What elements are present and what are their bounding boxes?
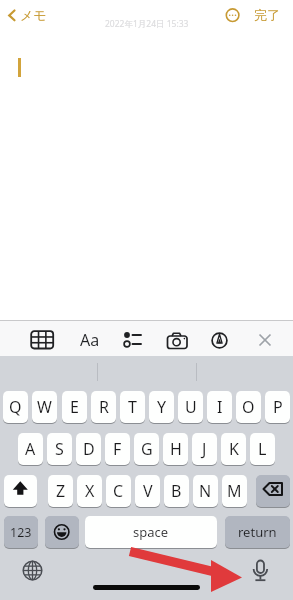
staticText: メモ (20, 7, 47, 23)
button[interactable]: Y (149, 391, 174, 423)
button[interactable]: N (193, 475, 218, 507)
staticText: return (238, 523, 277, 541)
button[interactable]: C (106, 475, 131, 507)
staticText: W (37, 396, 52, 418)
button[interactable]: T (120, 391, 145, 423)
staticText: C (113, 480, 124, 502)
staticText: I (217, 396, 223, 418)
button[interactable]: U (178, 391, 203, 423)
staticText: J (202, 438, 207, 460)
button[interactable] (256, 475, 290, 507)
button[interactable] (206, 327, 234, 353)
button[interactable]: Q (3, 391, 28, 423)
button[interactable]: 123 (4, 516, 38, 548)
button[interactable] (248, 556, 273, 584)
button[interactable]: Aa (74, 327, 106, 353)
button[interactable]: O (236, 391, 261, 423)
button[interactable]: L (250, 433, 275, 465)
button[interactable]: H (163, 433, 188, 465)
staticText: Aa (80, 329, 100, 351)
button[interactable]: return (225, 516, 290, 548)
staticText: V (143, 480, 153, 502)
staticText: space (133, 523, 169, 541)
staticText: G (141, 438, 153, 460)
button[interactable]: F (105, 433, 130, 465)
staticText: N (199, 480, 212, 502)
button[interactable]: M (222, 475, 247, 507)
button[interactable]: X (77, 475, 102, 507)
button[interactable] (252, 327, 278, 353)
staticText: Z (56, 480, 66, 502)
button[interactable]: E (62, 391, 87, 423)
staticText: U (185, 396, 197, 418)
staticText: 2022年1月24日 15:33 (105, 18, 189, 30)
button[interactable]: G (134, 433, 159, 465)
button[interactable]: V (135, 475, 160, 507)
staticText: K (229, 438, 239, 460)
button[interactable]: P (265, 391, 290, 423)
staticText: Q (9, 396, 22, 418)
staticText: B (171, 480, 182, 502)
staticText: A (25, 438, 36, 460)
staticText: S (55, 438, 64, 460)
button[interactable] (28, 327, 56, 353)
button[interactable] (45, 516, 79, 548)
button[interactable] (21, 559, 44, 582)
staticText: M (227, 480, 242, 502)
staticText: L (258, 438, 267, 460)
staticText: O (242, 396, 255, 418)
button[interactable]: B (164, 475, 189, 507)
button[interactable] (118, 327, 146, 353)
button[interactable]: I (207, 391, 232, 423)
staticText: E (70, 396, 79, 418)
button[interactable] (4, 475, 37, 507)
button[interactable]: R (91, 391, 116, 423)
button[interactable] (224, 6, 242, 24)
staticText: H (170, 438, 182, 460)
staticText: P (273, 396, 283, 418)
staticText: X (85, 480, 95, 502)
button[interactable]: W (32, 391, 57, 423)
staticText: D (83, 438, 95, 460)
button[interactable]: 完了 (248, 4, 286, 26)
button[interactable]: D (76, 433, 101, 465)
staticText: F (113, 438, 122, 460)
button[interactable]: Z (48, 475, 73, 507)
staticText: R (99, 396, 109, 418)
button[interactable]: K (221, 433, 246, 465)
staticText: 完了 (254, 7, 280, 23)
button[interactable] (164, 327, 192, 353)
button[interactable]: メモ (4, 4, 52, 28)
staticText: 123 (10, 524, 32, 541)
button[interactable]: A (18, 433, 43, 465)
staticText: T (128, 396, 137, 418)
staticText: Y (157, 396, 167, 418)
button[interactable]: J (192, 433, 217, 465)
button[interactable]: space (85, 516, 217, 548)
button[interactable]: S (47, 433, 72, 465)
